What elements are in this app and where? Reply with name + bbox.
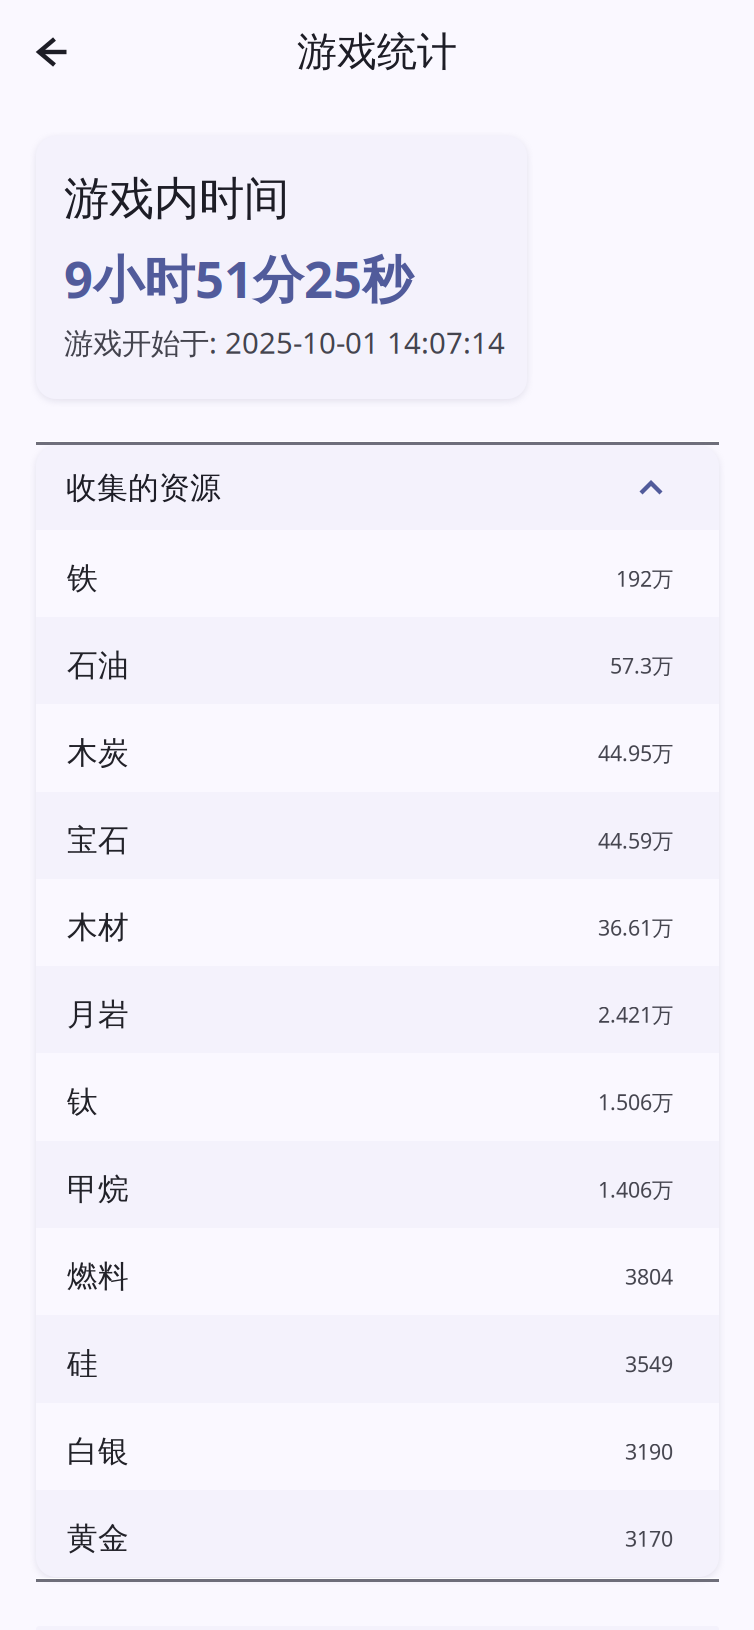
button[interactable]: 木材 [36, 879, 719, 966]
staticText: 游戏开始于: 2025-10-01 14:07:14 [64, 323, 505, 362]
staticText: 游戏统计 [297, 27, 457, 76]
button[interactable]: 月岩 [36, 966, 719, 1053]
staticText: 月岩 [67, 996, 129, 1033]
staticText: 3190 [625, 1437, 673, 1466]
staticText: 甲烷 [67, 1171, 129, 1208]
staticText: 宝石 [67, 822, 129, 859]
button[interactable]: 收集的资源 [36, 446, 719, 530]
staticText: 游戏内时间 [64, 171, 289, 227]
staticText: 黄金 [67, 1520, 129, 1557]
staticText: 2.421万 [598, 1000, 673, 1029]
staticText: 1.406万 [598, 1175, 673, 1204]
staticText: 木炭 [67, 734, 129, 772]
staticText: 3804 [625, 1262, 673, 1291]
staticText: 白银 [67, 1433, 129, 1470]
button[interactable]: 燃料 [36, 1228, 719, 1315]
staticText: 57.3万 [610, 651, 673, 680]
button[interactable]: 宝石 [36, 792, 719, 879]
staticText: 铁 [67, 560, 98, 597]
staticText: 3170 [625, 1524, 673, 1553]
staticText: 木材 [67, 909, 129, 946]
button[interactable]: 甲烷 [36, 1141, 719, 1228]
staticText: 9小时51分25秒 [64, 245, 413, 312]
button[interactable]: 白银 [36, 1403, 719, 1490]
button[interactable]: 铁 [36, 530, 719, 617]
button[interactable]: Back [0, 14, 106, 90]
button[interactable]: 黄金 [36, 1490, 719, 1577]
staticText: 收集的资源 [66, 469, 221, 507]
button[interactable]: 石油 [36, 617, 719, 704]
staticText: 1.506万 [598, 1088, 673, 1116]
staticText: 钛 [67, 1083, 98, 1121]
button[interactable]: 木炭 [36, 704, 719, 792]
staticText: 44.59万 [598, 826, 673, 855]
staticText: 石油 [67, 647, 129, 684]
button[interactable]: 钛 [36, 1053, 719, 1141]
staticText: 燃料 [67, 1258, 129, 1295]
staticText: 硅 [67, 1345, 98, 1383]
staticText: 36.61万 [598, 913, 673, 942]
staticText: 44.95万 [598, 739, 673, 767]
button[interactable]: 硅 [36, 1315, 719, 1403]
staticText: 192万 [616, 564, 673, 593]
staticText: 3549 [625, 1350, 673, 1378]
